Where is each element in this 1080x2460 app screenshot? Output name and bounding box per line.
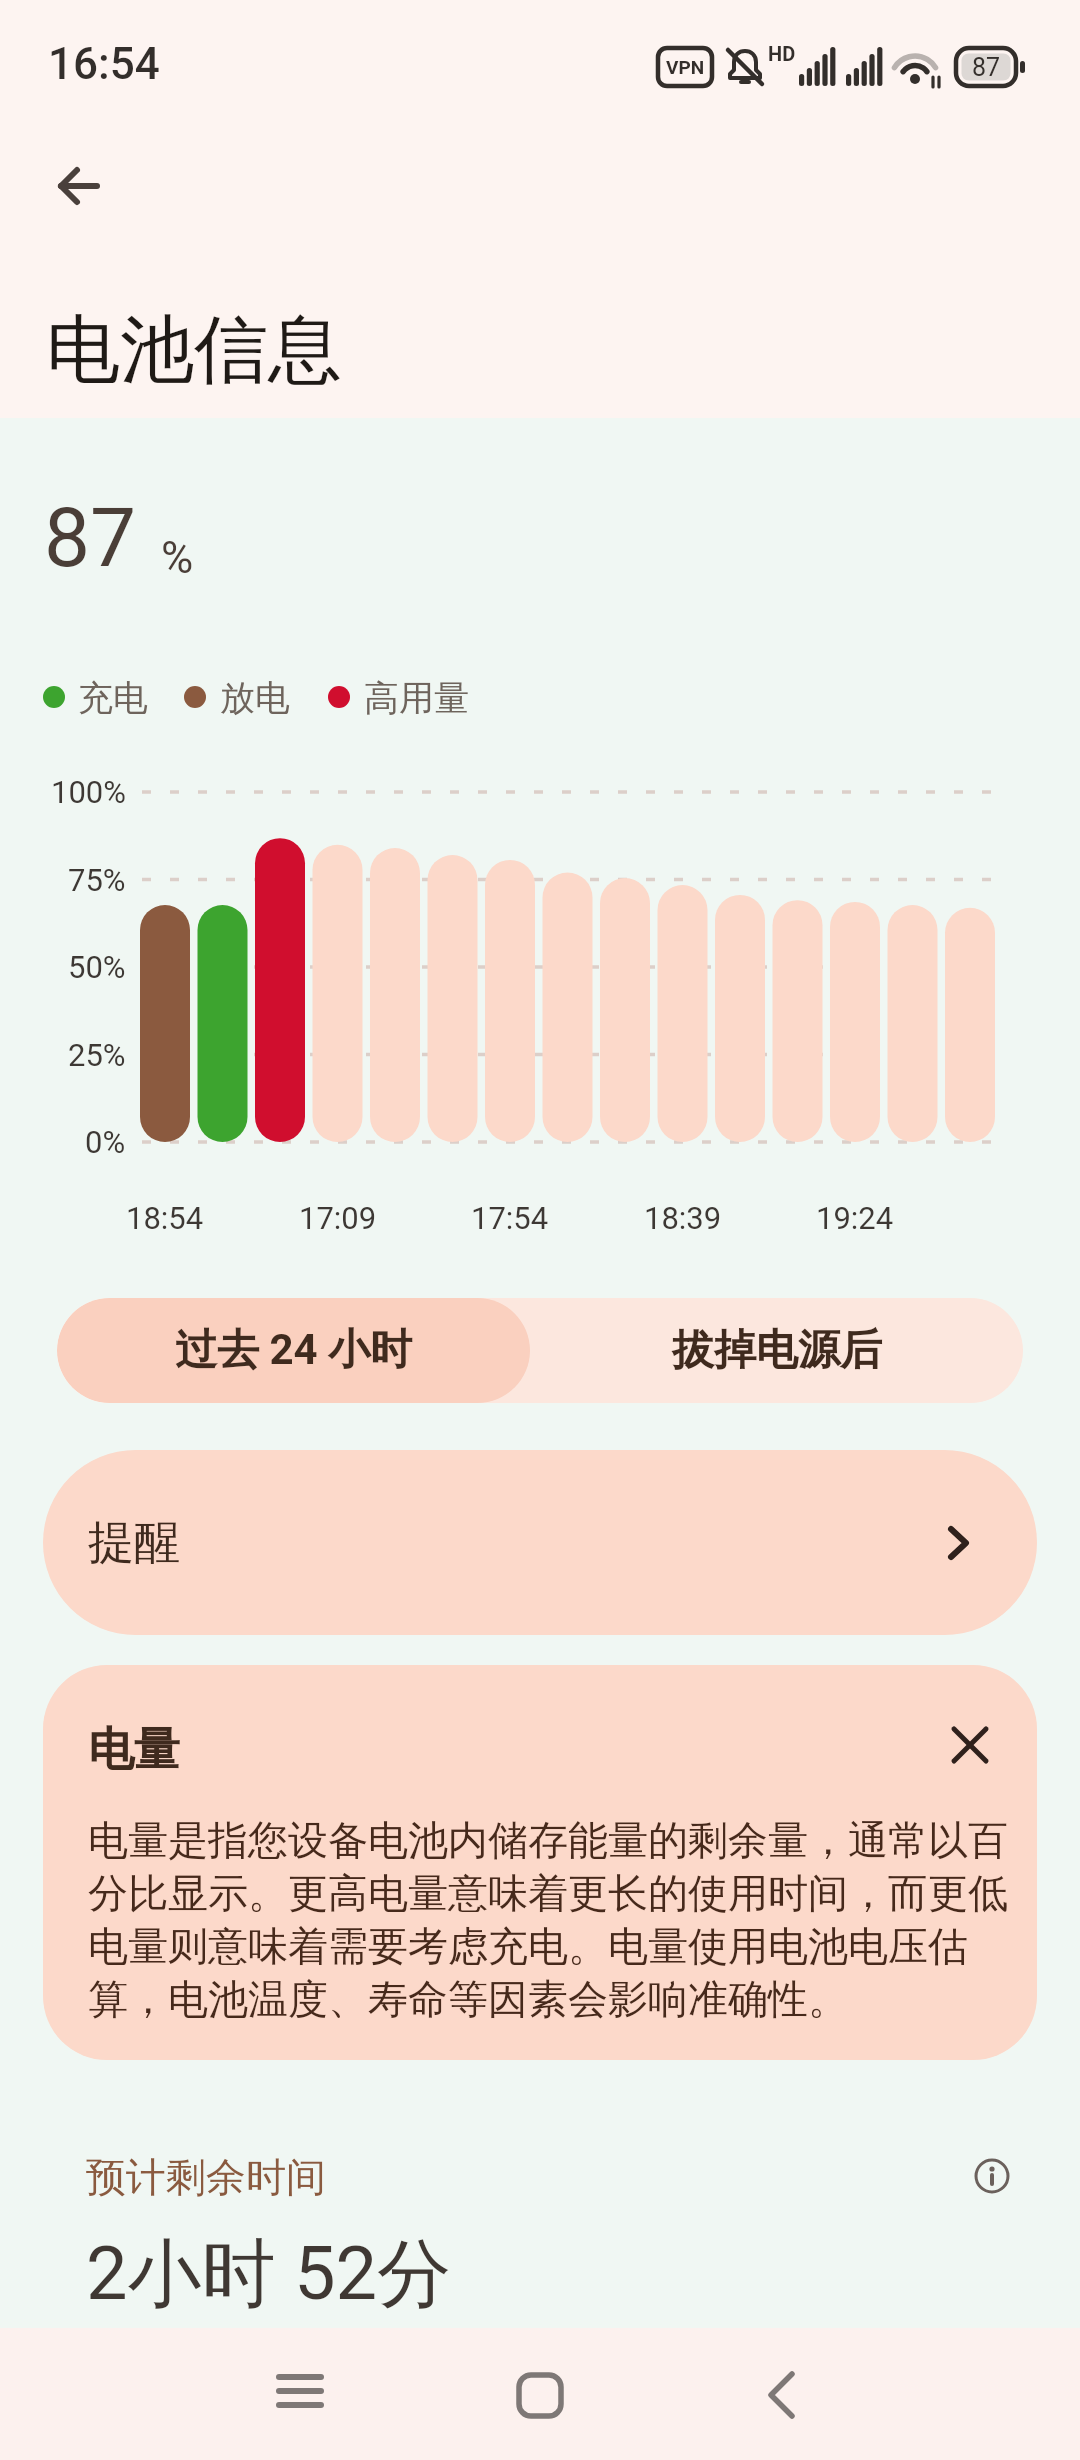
staticText: HD	[768, 42, 796, 65]
staticText: %	[161, 532, 194, 584]
staticText: 75%	[68, 862, 126, 898]
staticText: 放电	[220, 676, 290, 718]
staticText: 100%	[51, 774, 126, 810]
staticText: 电量	[88, 1721, 180, 1779]
staticText: 19:24	[816, 1200, 894, 1236]
staticText: 2小时 52分	[86, 2228, 452, 2321]
staticText: 18:39	[644, 1200, 722, 1236]
staticText: 电池信息	[46, 304, 342, 397]
button[interactable]	[508, 2363, 572, 2427]
button[interactable]: 过去 24 小时	[57, 1298, 530, 1403]
staticText: 预计剩余时间	[86, 2152, 326, 2202]
button[interactable]	[948, 1723, 992, 1767]
staticText: 提醒	[88, 1514, 180, 1572]
staticText: 16:54	[48, 38, 160, 90]
staticText: 电量是指您设备电池内储存能量的剩余量，通常以百 分比显示。更高电量意味着更长的使…	[88, 1815, 1008, 2024]
staticText: 17:09	[299, 1200, 377, 1236]
staticText: 充电	[78, 676, 148, 718]
staticText: 0%	[85, 1124, 126, 1160]
button[interactable]	[968, 2152, 1016, 2200]
staticText: 过去 24 小时	[175, 1324, 413, 1377]
button[interactable]: 提醒	[43, 1450, 1037, 1635]
staticText: 87	[44, 490, 137, 586]
staticText: 拔掉电源后	[672, 1324, 882, 1377]
staticText: 87	[972, 53, 1001, 82]
staticText: 50%	[68, 949, 126, 985]
staticText: 17:54	[471, 1200, 549, 1236]
button[interactable]	[44, 154, 108, 218]
staticText: 18:54	[126, 1200, 204, 1236]
staticText: 25%	[68, 1037, 126, 1073]
button[interactable]	[268, 2363, 332, 2427]
button[interactable]	[752, 2363, 816, 2427]
button[interactable]: 拔掉电源后	[530, 1298, 1023, 1403]
staticText: 高用量	[364, 676, 469, 718]
staticText: VPN	[666, 56, 705, 78]
